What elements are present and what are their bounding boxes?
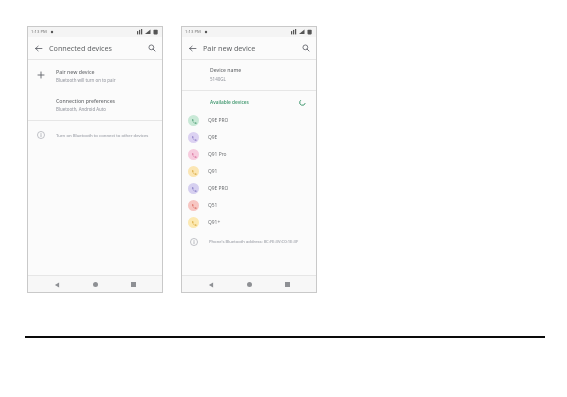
button[interactable]: Back xyxy=(181,37,203,59)
button[interactable]: Home xyxy=(241,276,258,293)
other: Scanning xyxy=(298,98,307,107)
button[interactable]: Q9E PRO xyxy=(181,112,317,129)
button[interactable]: Home xyxy=(87,276,104,293)
staticText: Q9E PRO xyxy=(208,117,229,124)
staticText: Q9E PRO xyxy=(208,185,229,192)
staticText: Q91+ xyxy=(208,219,221,226)
staticText: Connection preferences xyxy=(56,97,116,104)
button[interactable]: Q91 xyxy=(181,163,317,180)
staticText: Connected devices xyxy=(49,43,112,53)
staticText: Phone's Bluetooth address: 8C:FE:3V:C0:1… xyxy=(209,239,299,245)
staticText: 5140GL xyxy=(210,76,226,82)
staticText: Bluetooth will turn on to pair xyxy=(56,77,116,83)
button[interactable]: Q9E PRO xyxy=(181,180,317,197)
staticText: Q51 xyxy=(208,202,218,209)
button[interactable]: Q91+ xyxy=(181,214,317,231)
staticText: Device name xyxy=(210,67,242,74)
staticText: Q91 xyxy=(208,168,218,175)
button[interactable]: Recent apps xyxy=(279,276,296,293)
button[interactable]: Pair new device xyxy=(27,60,163,90)
button[interactable]: Q9E xyxy=(181,129,317,146)
staticText: Q91 Pro xyxy=(208,151,227,158)
staticText: Pair new device xyxy=(56,68,95,75)
button[interactable]: Search xyxy=(295,37,317,59)
staticText: Turn on Bluetooth to connect to other de… xyxy=(56,132,149,138)
button[interactable]: Back xyxy=(48,276,65,293)
staticText: Q9E xyxy=(208,134,218,141)
button[interactable]: Connection preferences xyxy=(27,90,163,120)
staticText: Available devices xyxy=(210,99,249,106)
button[interactable]: Search xyxy=(141,37,163,59)
button[interactable]: Recent apps xyxy=(125,276,142,293)
button[interactable]: Q51 xyxy=(181,197,317,214)
button[interactable]: Back xyxy=(202,276,219,293)
staticText: 1:13 PM xyxy=(31,29,47,35)
button[interactable]: Device name xyxy=(181,60,317,90)
staticText: Pair new device xyxy=(203,43,256,53)
staticText: 1:13 PM xyxy=(185,29,201,35)
staticText: Bluetooth, Android Auto xyxy=(56,106,107,112)
button[interactable]: Q91 Pro xyxy=(181,146,317,163)
button[interactable]: Back xyxy=(27,37,49,59)
